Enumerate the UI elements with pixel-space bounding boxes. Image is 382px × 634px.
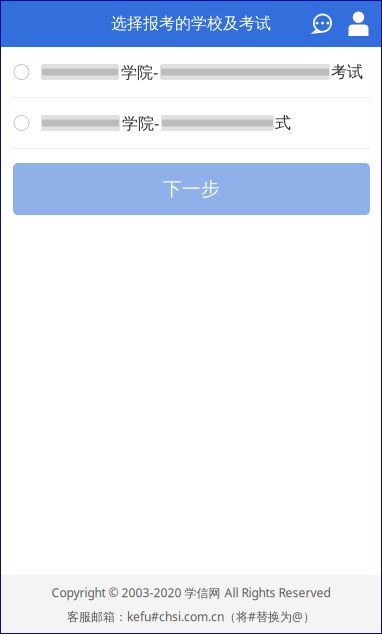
button[interactable]: Messages — [302, 0, 343, 47]
staticText: 考试 — [331, 62, 363, 82]
button[interactable]: 学院- — [0, 98, 382, 148]
staticText: 学院- — [122, 112, 159, 134]
button[interactable]: Account — [343, 0, 374, 47]
staticText: 客服邮箱：kefu#chsi.com.cn（将#替换为@） — [67, 608, 315, 624]
staticText: 式 — [275, 113, 291, 133]
button[interactable]: 下一步 — [13, 163, 370, 215]
staticText: Copyright © 2003-2020 学信网 All Rights Res… — [51, 584, 330, 600]
staticText: 选择报考的学校及考试 — [111, 14, 271, 33]
staticText: 学院- — [121, 61, 158, 83]
staticText: 下一步 — [163, 177, 220, 200]
button[interactable]: 学院- — [0, 47, 382, 97]
